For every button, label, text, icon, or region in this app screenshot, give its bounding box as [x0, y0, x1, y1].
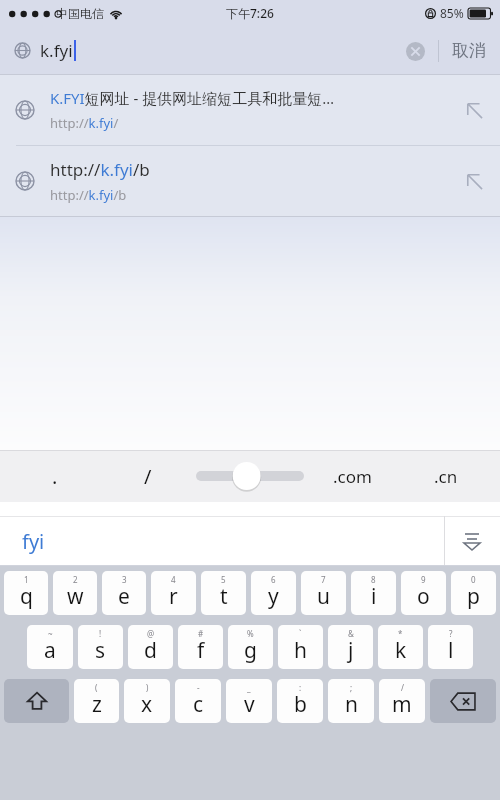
- staticText: w: [67, 582, 84, 611]
- staticText: h: [294, 636, 307, 665]
- staticText: 4: [171, 574, 176, 585]
- staticText: 0: [471, 574, 476, 585]
- button[interactable]: &: [328, 625, 373, 669]
- staticText: d: [144, 636, 157, 665]
- button[interactable]: _: [226, 679, 272, 723]
- staticText: 8: [371, 574, 376, 585]
- button[interactable]: ): [124, 679, 170, 723]
- staticText: c: [193, 690, 204, 719]
- button[interactable]: 2: [53, 571, 97, 615]
- button[interactable]: 取消: [450, 34, 488, 67]
- staticText: o: [417, 582, 430, 611]
- button[interactable]: Shift: [4, 679, 69, 723]
- staticText: 1: [24, 574, 29, 585]
- button[interactable]: 1: [4, 571, 48, 615]
- staticText: s: [95, 636, 106, 665]
- staticText: .: [52, 463, 58, 490]
- button[interactable]: More candidates: [444, 516, 500, 566]
- staticText: k.fyi: [40, 39, 73, 62]
- button[interactable]: ;: [328, 679, 374, 723]
- staticText: !: [99, 628, 102, 639]
- staticText: /: [401, 682, 404, 693]
- staticText: p: [467, 582, 480, 611]
- button[interactable]: ~: [27, 625, 73, 669]
- staticText: 中国电信: [56, 6, 104, 21]
- staticText: z: [92, 690, 102, 719]
- staticText: 下午7:26: [226, 5, 274, 21]
- button[interactable]: http://k.fyi/b: [0, 146, 500, 216]
- button[interactable]: /: [379, 679, 425, 723]
- staticText: q: [20, 582, 33, 611]
- button[interactable]: 0: [451, 571, 496, 615]
- staticText: fyi: [22, 528, 45, 555]
- button[interactable]: .: [8, 450, 101, 502]
- staticText: (: [95, 682, 98, 693]
- button[interactable]: Backspace: [430, 679, 496, 723]
- button[interactable]: 7: [301, 571, 346, 615]
- staticText: 7: [321, 574, 326, 585]
- button[interactable]: *: [378, 625, 423, 669]
- button[interactable]: %: [228, 625, 273, 669]
- staticText: ;: [350, 682, 353, 693]
- button[interactable]: @: [128, 625, 173, 669]
- staticText: 6: [271, 574, 276, 585]
- staticText: f: [197, 636, 205, 665]
- button[interactable]: Fill in: [448, 100, 500, 121]
- button[interactable]: Slider: [194, 450, 306, 502]
- button[interactable]: 4: [151, 571, 196, 615]
- staticText: &: [348, 628, 354, 639]
- button[interactable]: (: [74, 679, 119, 723]
- button[interactable]: Clear: [402, 38, 428, 64]
- staticText: .cn: [434, 465, 458, 488]
- staticText: n: [345, 690, 358, 719]
- staticText: k: [395, 636, 407, 665]
- staticText: ): [146, 682, 149, 693]
- button[interactable]: /: [101, 450, 194, 502]
- staticText: v: [244, 690, 255, 719]
- staticText: 85%: [440, 5, 464, 21]
- staticText: %: [247, 628, 254, 639]
- staticText: a: [44, 636, 56, 665]
- button[interactable]: .com: [306, 450, 399, 502]
- staticText: t: [220, 582, 228, 611]
- staticText: ~: [48, 628, 53, 639]
- button[interactable]: :: [277, 679, 323, 723]
- button[interactable]: 5: [201, 571, 246, 615]
- staticText: j: [348, 636, 354, 665]
- staticText: ?: [449, 628, 453, 639]
- button[interactable]: Fill in: [448, 171, 500, 192]
- staticText: u: [317, 582, 330, 611]
- button[interactable]: 9: [401, 571, 446, 615]
- staticText: 3: [122, 574, 127, 585]
- staticText: m: [392, 690, 412, 719]
- button[interactable]: ?: [428, 625, 473, 669]
- button[interactable]: K.FYI短网址 - 提供网址缩短工具和批量短…: [0, 75, 500, 145]
- staticText: :: [299, 682, 302, 693]
- staticText: _: [247, 682, 251, 693]
- button[interactable]: !: [78, 625, 123, 669]
- button[interactable]: 6: [251, 571, 296, 615]
- staticText: http://k.fyi/: [50, 114, 119, 132]
- staticText: K.FYI短网址 - 提供网址缩短工具和批量短…: [50, 88, 335, 108]
- staticText: -: [197, 682, 200, 693]
- button[interactable]: .cn: [399, 450, 492, 502]
- staticText: r: [169, 582, 178, 611]
- staticText: 取消: [452, 40, 486, 61]
- button[interactable]: 3: [102, 571, 146, 615]
- button[interactable]: -: [175, 679, 221, 723]
- staticText: 2: [73, 574, 78, 585]
- staticText: http://k.fyi/b: [50, 186, 127, 204]
- staticText: *: [398, 628, 403, 639]
- button[interactable]: 8: [351, 571, 396, 615]
- staticText: x: [141, 690, 153, 719]
- staticText: http://k.fyi/b: [50, 158, 150, 181]
- staticText: .com: [333, 465, 372, 488]
- staticText: /: [144, 463, 152, 490]
- staticText: 9: [421, 574, 426, 585]
- staticText: #: [198, 628, 204, 639]
- button[interactable]: `: [278, 625, 323, 669]
- staticText: `: [299, 628, 302, 639]
- button[interactable]: #: [178, 625, 223, 669]
- staticText: 5: [221, 574, 226, 585]
- staticText: @: [147, 628, 155, 639]
